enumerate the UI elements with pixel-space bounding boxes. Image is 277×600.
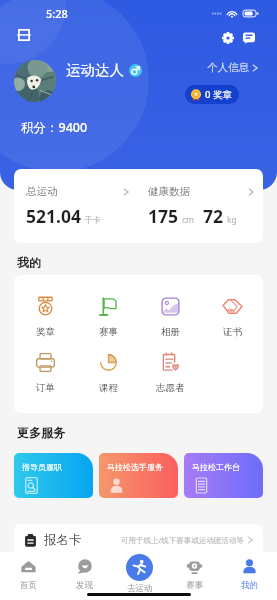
staticText: 证书 — [223, 326, 242, 338]
staticText: 相册 — [161, 326, 180, 338]
staticText: 健康数据 — [148, 185, 190, 198]
staticText: 175 — [148, 204, 179, 228]
staticText: 课程 — [99, 382, 118, 394]
staticText: 赛事 — [186, 580, 203, 591]
staticText: 我的 — [241, 580, 258, 591]
button[interactable]: Settings — [217, 27, 239, 49]
staticText: 订单 — [36, 382, 55, 394]
staticText: 我的 — [17, 255, 41, 270]
button[interactable]: 首页 — [0, 552, 56, 600]
button[interactable]: 奖章 — [14, 296, 77, 338]
staticText: 个人信息 — [207, 61, 249, 74]
button[interactable]: 证书 — [201, 296, 263, 338]
button[interactable]: 发现 — [56, 552, 112, 600]
button[interactable]: Avatar — [14, 60, 56, 102]
staticText: 总运动 — [26, 185, 58, 198]
staticText: kg — [227, 214, 237, 226]
staticText: 奖章 — [36, 326, 55, 338]
button[interactable]: 总运动 — [14, 169, 138, 228]
button[interactable]: 志愿者 — [139, 352, 201, 394]
staticText: 0 奖章 — [205, 88, 232, 101]
staticText: 发现 — [76, 580, 93, 591]
staticText: 指导员履职 — [22, 462, 62, 472]
staticText: 5:28 — [46, 6, 68, 21]
button[interactable]: 赛事 — [77, 296, 139, 338]
button[interactable]: Messages — [238, 27, 260, 49]
staticText: 可用于线上/线下赛事或运动团活动等 — [121, 535, 244, 545]
button[interactable]: 相册 — [139, 296, 201, 338]
staticText: 去运动 — [127, 583, 153, 594]
button[interactable]: 订单 — [14, 352, 77, 394]
staticText: 运动达人 — [66, 61, 124, 79]
button[interactable]: 报名卡 — [14, 524, 263, 566]
staticText: 更多服务 — [17, 425, 65, 440]
button[interactable]: 课程 — [77, 352, 139, 394]
button[interactable]: 去运动 — [112, 552, 167, 600]
button[interactable]: 赛事 — [167, 552, 222, 600]
staticText: 首页 — [20, 580, 37, 591]
button[interactable]: 健康数据 — [138, 169, 263, 228]
button[interactable]: 指导员履职 — [14, 453, 93, 498]
staticText: 志愿者 — [156, 382, 185, 394]
staticText: 千卡 — [84, 215, 101, 226]
staticText: 72 — [203, 204, 224, 228]
button[interactable]: 我的 — [222, 552, 277, 600]
staticText: 521.04 — [26, 204, 81, 228]
staticText: 赛事 — [99, 326, 118, 338]
button[interactable]: 0 奖章 — [185, 85, 239, 104]
button[interactable]: 马拉松工作台 — [184, 453, 263, 498]
staticText: 马拉松选手服务 — [107, 462, 163, 472]
staticText: 马拉松工作台 — [192, 462, 240, 472]
staticText: 报名卡 — [44, 532, 82, 548]
button[interactable]: 马拉松选手服务 — [99, 453, 178, 498]
button[interactable]: Scan QR code — [13, 24, 35, 46]
staticText: cm — [182, 214, 195, 226]
button[interactable]: 个人信息 — [205, 59, 260, 76]
staticText: 积分：9400 — [21, 119, 88, 136]
